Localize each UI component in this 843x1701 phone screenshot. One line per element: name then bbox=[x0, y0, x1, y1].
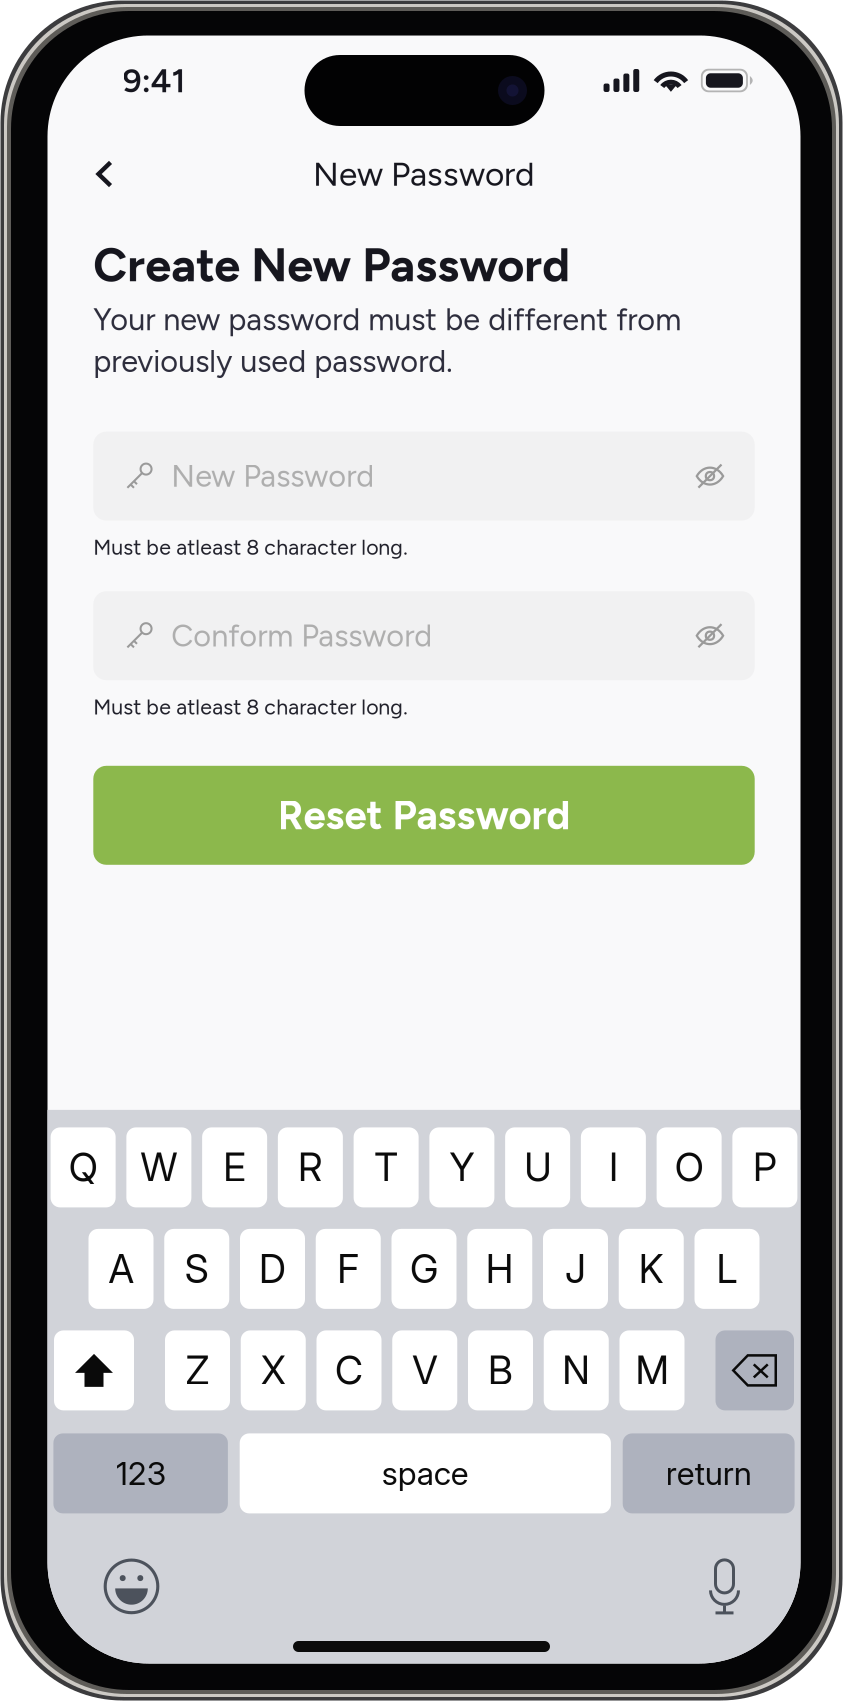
button[interactable]: A bbox=[88, 1229, 153, 1309]
button[interactable]: Reset Password bbox=[93, 766, 755, 865]
staticText: C bbox=[335, 1347, 363, 1394]
staticText: 9:41 bbox=[122, 60, 185, 100]
button[interactable]: I bbox=[581, 1127, 646, 1207]
staticText: H bbox=[486, 1245, 514, 1292]
button[interactable]: Z bbox=[165, 1330, 230, 1410]
staticText: 123 bbox=[116, 1454, 166, 1493]
button[interactable]: T bbox=[354, 1127, 419, 1207]
button[interactable]: E bbox=[202, 1127, 267, 1207]
button[interactable]: L bbox=[694, 1229, 759, 1309]
button[interactable]: W bbox=[126, 1127, 191, 1207]
staticText: O bbox=[675, 1144, 704, 1191]
button[interactable]: space bbox=[240, 1433, 611, 1513]
button[interactable]: J bbox=[543, 1229, 608, 1309]
staticText: V bbox=[412, 1347, 437, 1394]
staticText: N bbox=[562, 1347, 590, 1394]
staticText: Z bbox=[185, 1347, 209, 1394]
button[interactable]: R bbox=[278, 1127, 343, 1207]
staticText: L bbox=[716, 1245, 737, 1292]
staticText: Conform Password bbox=[171, 617, 432, 654]
staticText: Q bbox=[69, 1144, 98, 1191]
staticText: New Password bbox=[171, 458, 374, 494]
staticText: Your new password must be different from… bbox=[93, 301, 681, 380]
staticText: Y bbox=[449, 1144, 474, 1191]
staticText: Create New Password bbox=[93, 237, 570, 293]
staticText: D bbox=[259, 1245, 286, 1292]
button[interactable]: U bbox=[505, 1127, 570, 1207]
staticText: G bbox=[410, 1245, 438, 1292]
button[interactable]: Emoji keyboard bbox=[103, 1558, 159, 1614]
staticText: X bbox=[261, 1347, 286, 1394]
button[interactable]: B bbox=[468, 1330, 533, 1410]
button[interactable]: P bbox=[732, 1127, 797, 1207]
button[interactable]: S bbox=[164, 1229, 229, 1309]
staticText: M bbox=[635, 1347, 668, 1394]
button[interactable]: Back bbox=[82, 148, 127, 200]
button[interactable]: V bbox=[392, 1330, 457, 1410]
staticText: W bbox=[140, 1144, 177, 1191]
staticText: B bbox=[488, 1347, 513, 1394]
button[interactable]: Q bbox=[51, 1127, 116, 1207]
staticText: P bbox=[753, 1144, 777, 1191]
button[interactable]: X bbox=[241, 1330, 306, 1410]
button[interactable]: Shift bbox=[54, 1330, 134, 1410]
staticText: J bbox=[565, 1245, 586, 1292]
staticText: R bbox=[298, 1144, 323, 1191]
button[interactable]: New Password bbox=[93, 432, 755, 521]
button[interactable]: M bbox=[619, 1330, 684, 1410]
button[interactable]: Delete bbox=[715, 1330, 794, 1410]
button[interactable]: H bbox=[467, 1229, 532, 1309]
button[interactable]: 123 bbox=[53, 1433, 228, 1513]
button[interactable]: Conform Password bbox=[93, 591, 755, 680]
staticText: Reset Password bbox=[277, 791, 570, 839]
staticText: K bbox=[639, 1245, 664, 1292]
button[interactable]: Dictation bbox=[704, 1558, 744, 1614]
staticText: Must be atleast 8 character long. bbox=[93, 535, 407, 560]
staticText: E bbox=[223, 1144, 246, 1191]
button[interactable]: O bbox=[657, 1127, 722, 1207]
staticText: New Password bbox=[313, 154, 535, 194]
button[interactable]: G bbox=[391, 1229, 456, 1309]
staticText: S bbox=[185, 1245, 209, 1292]
button[interactable]: return bbox=[623, 1433, 795, 1513]
staticText: F bbox=[337, 1245, 359, 1292]
button[interactable]: K bbox=[619, 1229, 684, 1309]
button[interactable]: N bbox=[544, 1330, 609, 1410]
staticText: return bbox=[666, 1454, 752, 1493]
staticText: Must be atleast 8 character long. bbox=[93, 694, 407, 720]
staticText: I bbox=[609, 1144, 618, 1191]
button[interactable]: Y bbox=[429, 1127, 494, 1207]
staticText: U bbox=[524, 1144, 551, 1191]
staticText: T bbox=[374, 1144, 398, 1191]
button[interactable]: F bbox=[316, 1229, 381, 1309]
staticText: space bbox=[382, 1454, 469, 1493]
staticText: A bbox=[108, 1245, 133, 1292]
button[interactable]: D bbox=[240, 1229, 305, 1309]
button[interactable]: C bbox=[316, 1330, 381, 1410]
